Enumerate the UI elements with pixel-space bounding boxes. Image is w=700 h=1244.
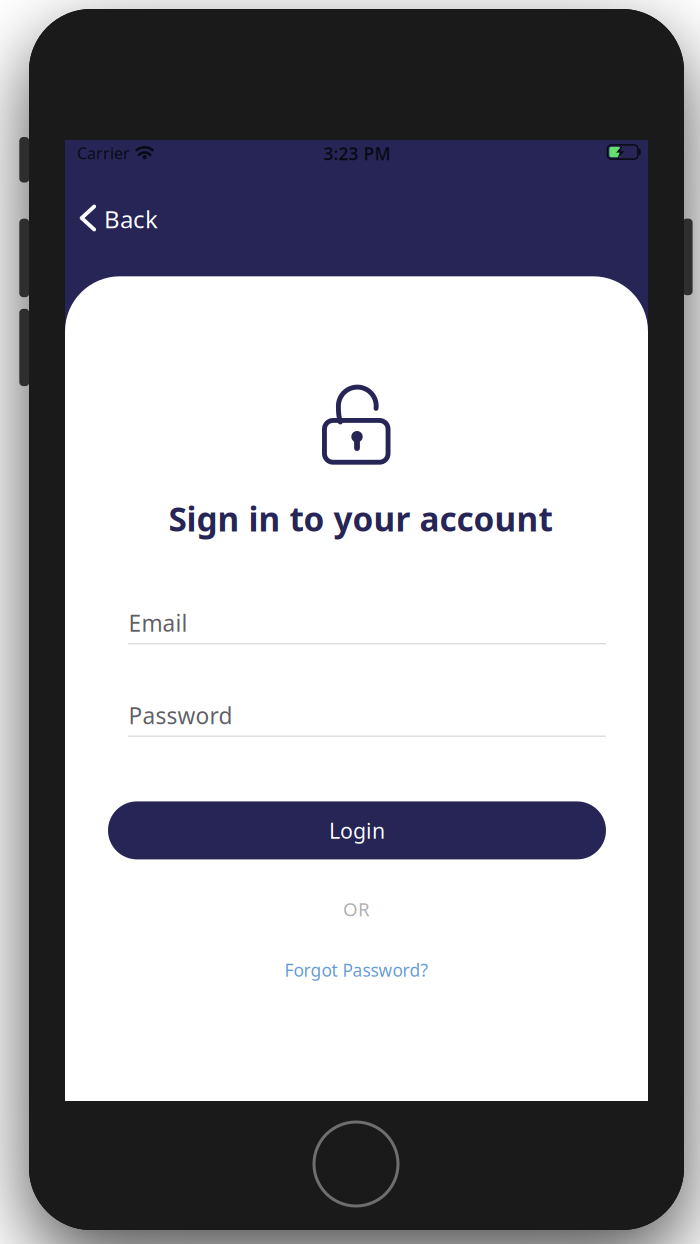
staticText: Sign in to your account bbox=[168, 496, 552, 541]
button[interactable]: Login bbox=[108, 801, 606, 859]
staticText: Email bbox=[128, 608, 187, 638]
staticText: Password bbox=[128, 700, 232, 730]
staticText: OR bbox=[343, 897, 370, 921]
staticText: Back bbox=[104, 203, 158, 235]
button[interactable]: Back bbox=[65, 191, 285, 245]
staticText: 3:23 PM bbox=[323, 142, 390, 165]
button[interactable]: Password bbox=[128, 699, 606, 744]
button[interactable]: Forgot Password? bbox=[65, 958, 648, 982]
staticText: Forgot Password? bbox=[284, 958, 428, 981]
staticText: Login bbox=[329, 816, 385, 844]
staticText: Carrier bbox=[77, 142, 130, 164]
button[interactable]: Email bbox=[128, 607, 606, 652]
